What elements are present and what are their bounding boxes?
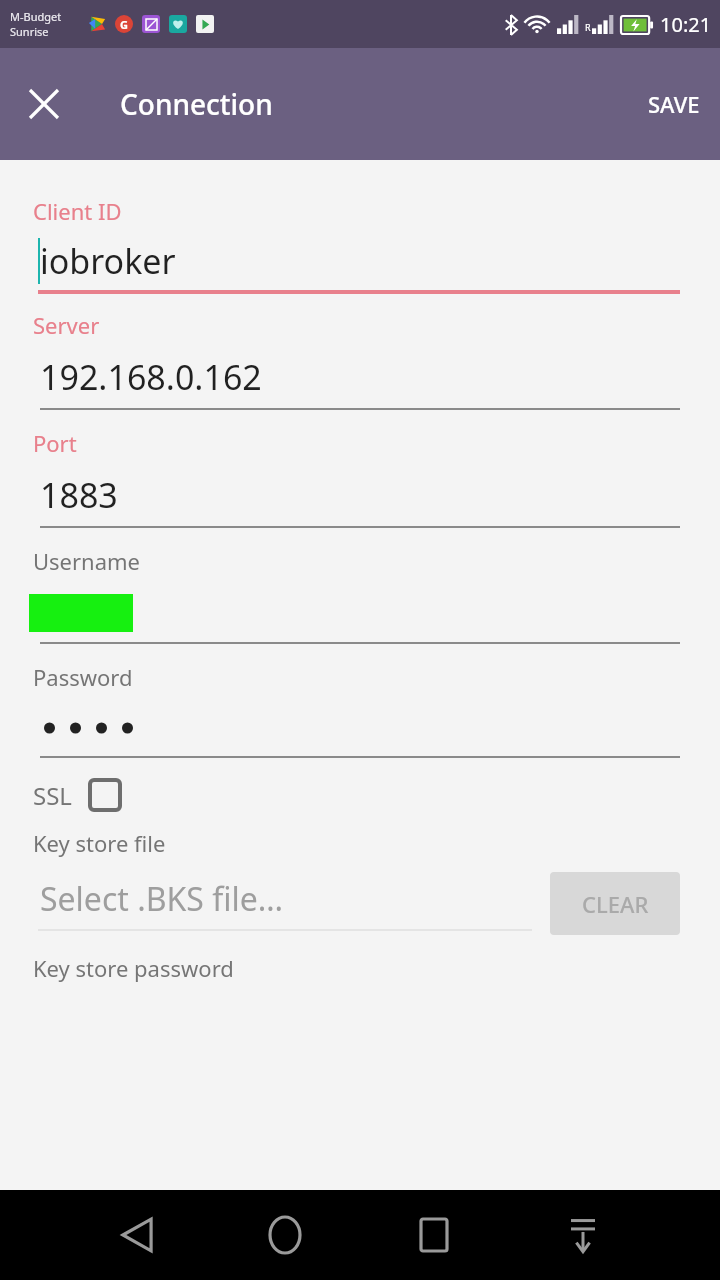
- staticText: 192.168.0.162: [40, 354, 262, 400]
- staticText: CLEAR: [582, 889, 649, 919]
- button[interactable]: Close: [14, 74, 74, 134]
- staticText: SAVE: [648, 89, 700, 119]
- staticText: SSL: [33, 779, 72, 812]
- button[interactable]: CLEAR: [550, 872, 680, 935]
- button[interactable]: SSL: [33, 778, 122, 812]
- staticText: G: [120, 17, 128, 32]
- staticText: M-Budget: [10, 9, 62, 24]
- button[interactable]: [0, 594, 720, 634]
- staticText: R: [585, 21, 591, 33]
- staticText: 10:21: [660, 11, 712, 38]
- staticText: Select .BKS file…: [40, 877, 284, 921]
- button[interactable]: Select .BKS file…: [0, 877, 550, 931]
- button[interactable]: Back: [100, 1190, 174, 1280]
- staticText: Username: [33, 546, 141, 576]
- staticText: Key store file: [33, 828, 166, 858]
- button[interactable]: Recent apps: [397, 1190, 471, 1280]
- staticText: Connection: [120, 85, 273, 123]
- staticText: 1883: [40, 472, 118, 518]
- staticText: Port: [33, 428, 77, 458]
- staticText: iobroker: [40, 238, 176, 284]
- staticText: Server: [33, 310, 100, 340]
- button[interactable]: iobroker: [0, 238, 720, 284]
- staticText: Password: [33, 662, 133, 692]
- staticText: Key store password: [33, 953, 234, 983]
- button[interactable]: SAVE: [628, 71, 720, 137]
- button[interactable]: [0, 714, 720, 742]
- staticText: Sunrise: [10, 24, 49, 39]
- staticText: Client ID: [33, 196, 122, 226]
- button[interactable]: Home: [248, 1190, 322, 1280]
- button[interactable]: Hide keyboard: [546, 1190, 620, 1280]
